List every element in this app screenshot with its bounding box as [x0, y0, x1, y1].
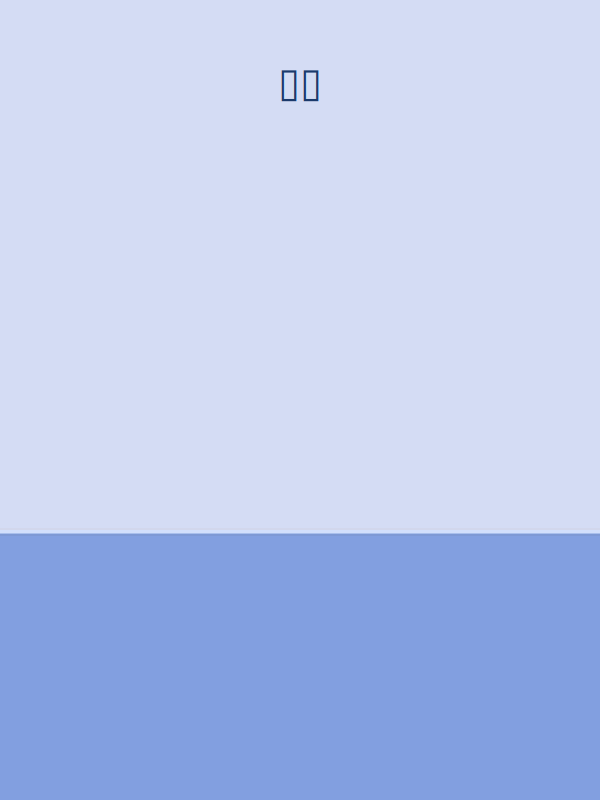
staticText: ▯▯ [278, 60, 322, 105]
